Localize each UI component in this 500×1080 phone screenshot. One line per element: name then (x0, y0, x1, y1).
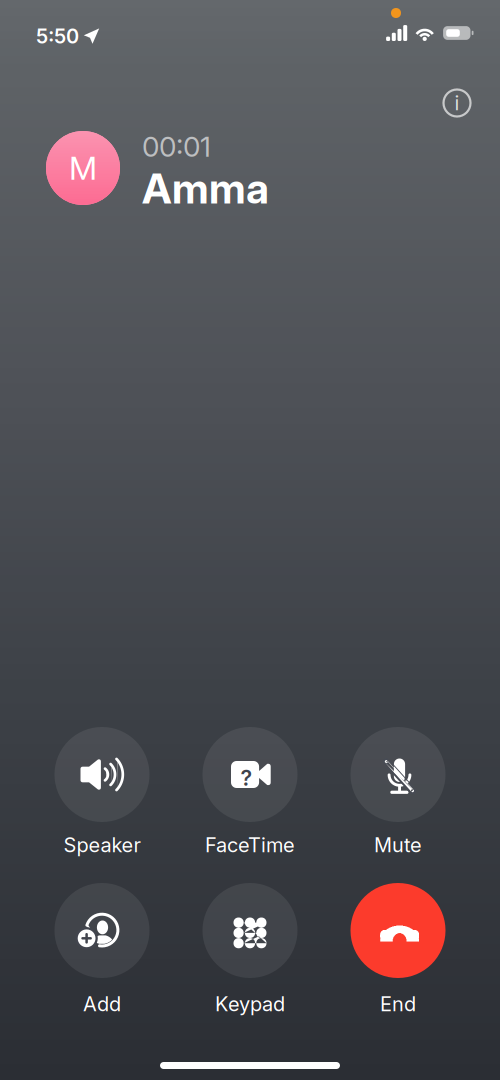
staticText: M (69, 149, 97, 187)
staticText: Amma (142, 163, 269, 213)
button[interactable]: Keypad (176, 883, 324, 1015)
staticText: i (454, 91, 459, 115)
button[interactable]: ? (176, 727, 324, 856)
staticText: 5:50 (36, 24, 79, 48)
button[interactable]: Call info (435, 81, 479, 125)
staticText: Mute (374, 833, 422, 857)
button[interactable]: End (324, 883, 472, 1015)
staticText: End (380, 992, 416, 1016)
staticText: Speaker (63, 833, 140, 857)
staticText: Add (83, 992, 121, 1016)
button[interactable]: Add (28, 883, 176, 1015)
staticText: ? (240, 765, 252, 791)
staticText: FaceTime (205, 833, 295, 857)
button[interactable]: Mute (324, 727, 472, 856)
button[interactable]: Speaker (28, 727, 176, 856)
staticText: Keypad (215, 992, 285, 1016)
staticText: 00:01 (142, 130, 211, 163)
